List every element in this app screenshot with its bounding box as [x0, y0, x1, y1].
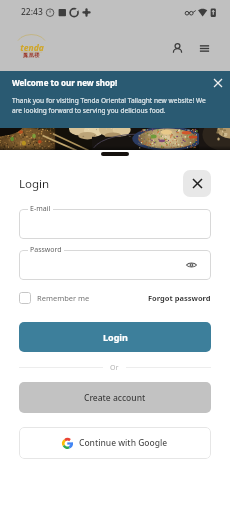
button[interactable]	[19, 209, 211, 239]
button[interactable]: Login	[19, 322, 211, 352]
staticText: Welcome to our new shop!	[12, 77, 118, 88]
button[interactable]	[19, 250, 211, 280]
button[interactable]: Drag handle	[101, 152, 129, 156]
button[interactable]: Account	[165, 36, 189, 60]
staticText: Thank you for visiting Tenda Oriental Ta…	[12, 96, 206, 115]
staticText: Login	[19, 176, 50, 192]
staticText: Continue with Google	[79, 437, 168, 449]
button[interactable]: Close banner	[210, 75, 226, 91]
button[interactable]: Create account	[19, 382, 211, 413]
button[interactable]: Continue with Google	[19, 427, 211, 459]
button[interactable]: Menu	[192, 36, 216, 60]
staticText: E-mail	[30, 204, 51, 214]
staticText: 鳳凰楼	[23, 52, 40, 59]
button[interactable]: Close	[183, 170, 211, 197]
button[interactable]: Show password	[184, 258, 198, 272]
staticText: Remember me	[37, 293, 90, 303]
button[interactable]: Remember me	[19, 292, 90, 304]
staticText: Password	[30, 245, 62, 255]
staticText: 22:43	[21, 6, 43, 18]
staticText: Create account	[84, 392, 146, 404]
button[interactable]: Forgot password	[148, 293, 211, 303]
staticText: Or	[110, 363, 119, 373]
staticText: Login	[103, 331, 128, 343]
staticText: tenda	[20, 42, 44, 54]
